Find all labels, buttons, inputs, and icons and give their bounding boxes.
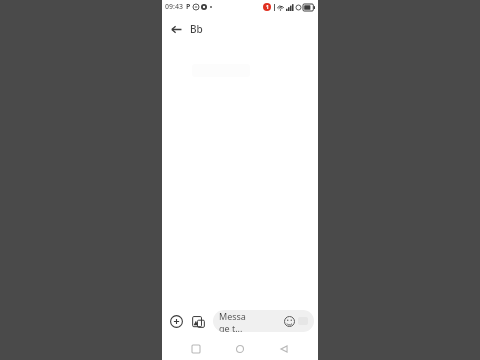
button[interactable]: Back — [165, 18, 187, 40]
button[interactable]: Recent apps — [186, 339, 206, 359]
button[interactable]: Emoji — [282, 314, 296, 328]
button[interactable]: Message t... — [213, 310, 314, 332]
staticText: 09:43 — [165, 2, 183, 12]
button[interactable]: Add attachment — [166, 311, 186, 331]
staticText: Message t... — [219, 310, 250, 332]
button[interactable]: Gallery — [188, 311, 208, 331]
button[interactable]: Back — [274, 339, 294, 359]
button[interactable]: Bb — [190, 22, 203, 36]
staticText: 1 — [266, 4, 269, 11]
staticText: P — [186, 2, 191, 12]
button[interactable]: Home — [230, 339, 250, 359]
